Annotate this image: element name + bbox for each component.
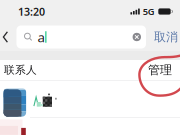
staticText: 取消 [154, 30, 178, 44]
staticText: 管理 [148, 63, 172, 77]
button[interactable]: a [16, 25, 146, 48]
staticText: 13:20 [18, 4, 45, 19]
button[interactable]: Back [0, 24, 16, 50]
staticText: a [38, 28, 45, 46]
button[interactable] [0, 81, 180, 118]
button[interactable]: 取消 [146, 24, 180, 50]
button[interactable]: 管理 [145, 58, 175, 82]
button[interactable] [0, 118, 180, 135]
staticText: 联系人 [4, 63, 37, 76]
staticText: 5G [143, 5, 155, 18]
